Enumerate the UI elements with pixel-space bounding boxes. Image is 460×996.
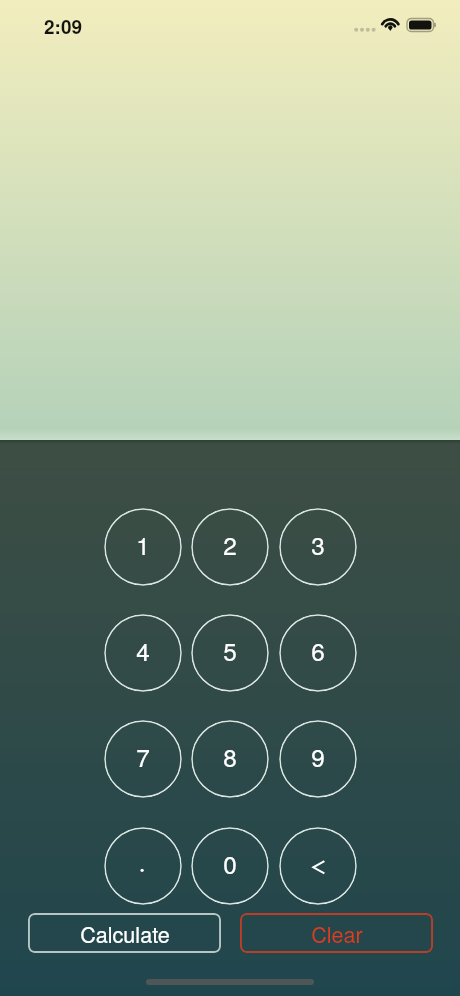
staticText: Calculate <box>80 918 170 949</box>
staticText: 0 <box>223 846 237 881</box>
button[interactable]: 7 <box>104 720 182 798</box>
button[interactable]: 1 <box>104 508 182 586</box>
button[interactable]: Backspace <box>279 827 357 905</box>
staticText: 5 <box>223 633 237 668</box>
staticText: 2 <box>223 527 237 562</box>
staticText: 2:09 <box>44 13 83 40</box>
staticText: 7 <box>136 739 150 774</box>
staticText: 8 <box>223 739 237 774</box>
button[interactable]: 6 <box>279 614 357 692</box>
staticText: 4 <box>136 633 150 668</box>
button[interactable]: 0 <box>191 827 269 905</box>
staticText: 9 <box>311 739 325 774</box>
button[interactable]: 2 <box>191 508 269 586</box>
button[interactable]: 5 <box>191 614 269 692</box>
button[interactable]: 9 <box>279 720 357 798</box>
button[interactable]: Decimal point <box>104 827 182 905</box>
staticText: Clear <box>311 918 363 949</box>
button[interactable]: 3 <box>279 508 357 586</box>
button[interactable]: 4 <box>104 614 182 692</box>
button[interactable]: Clear <box>240 913 433 953</box>
button[interactable]: 8 <box>191 720 269 798</box>
button[interactable]: Calculate <box>28 913 221 953</box>
staticText: 1 <box>136 527 150 562</box>
staticText: 3 <box>311 527 325 562</box>
staticText: 6 <box>311 633 325 668</box>
